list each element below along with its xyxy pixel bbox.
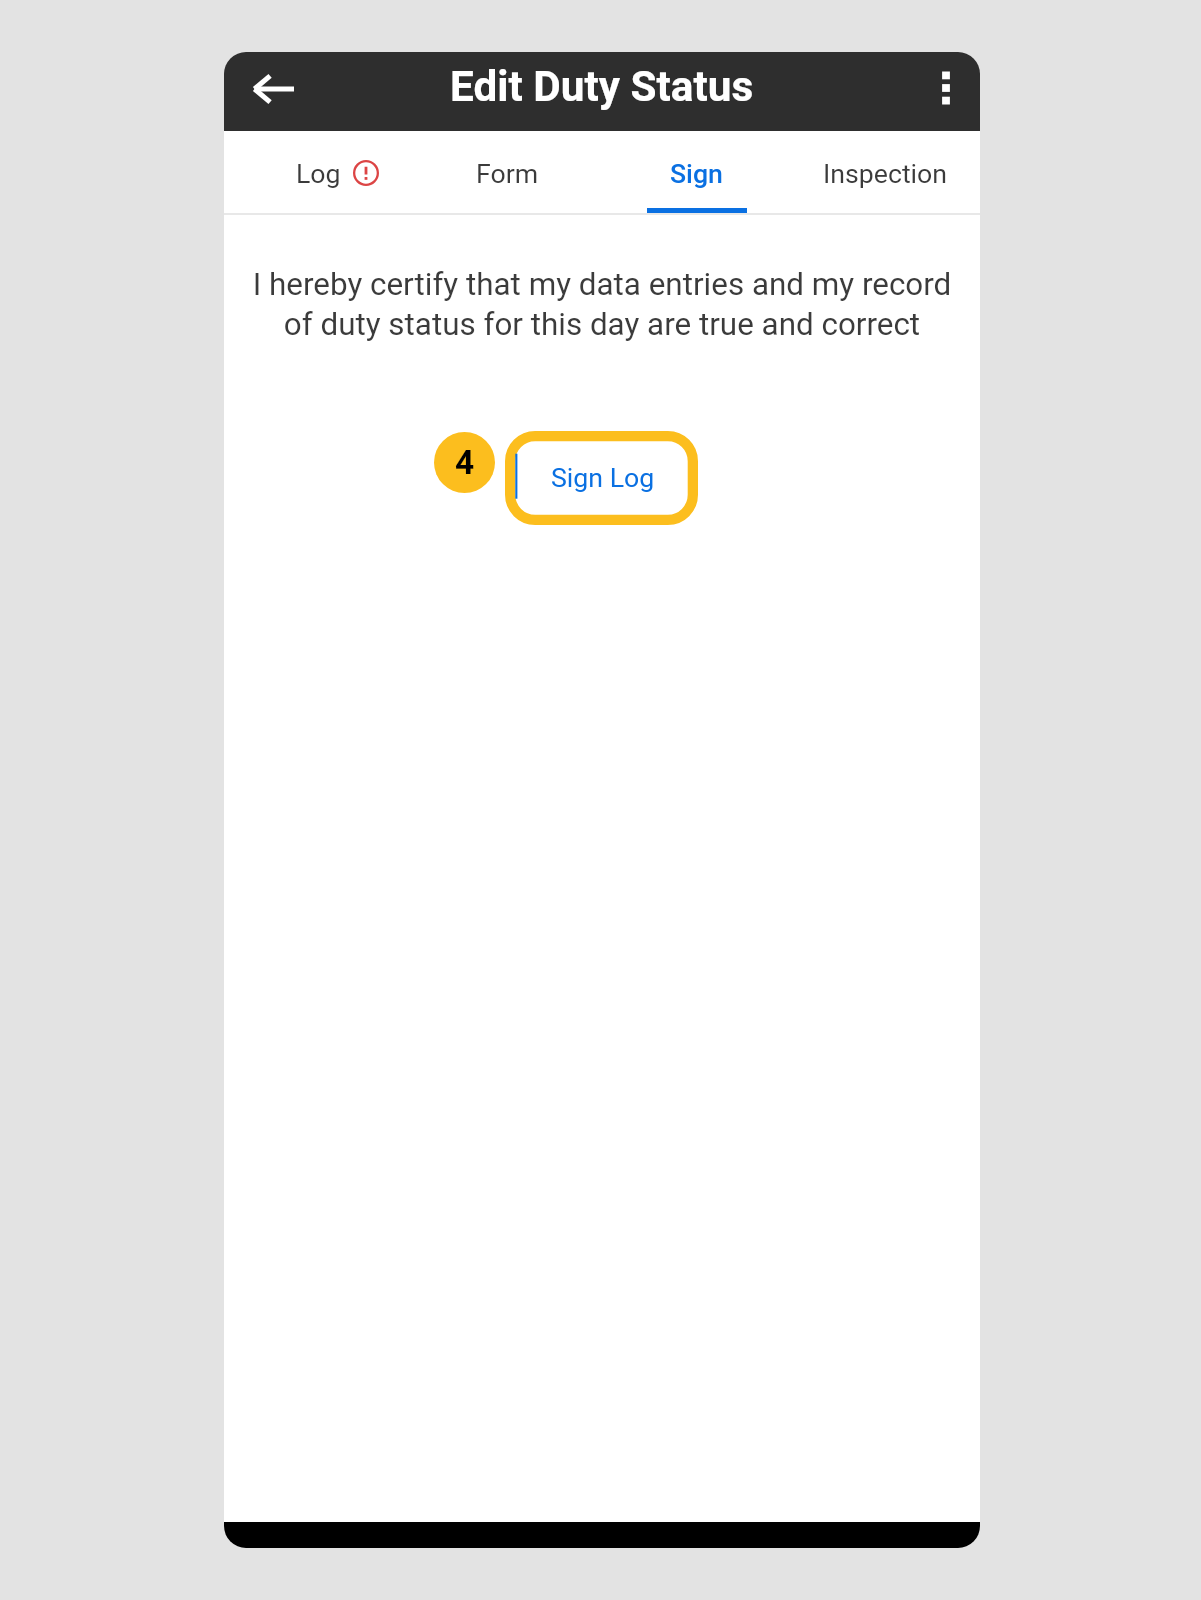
staticText: Edit Duty Status xyxy=(450,62,754,112)
staticText: Inspection xyxy=(823,158,948,189)
staticText: Log xyxy=(296,158,341,189)
button[interactable]: Sign Log xyxy=(505,431,698,525)
staticText: 4 xyxy=(455,443,475,482)
button[interactable]: Form xyxy=(413,131,602,215)
staticText: Sign Log xyxy=(551,462,655,493)
staticText: Form xyxy=(476,158,539,189)
staticText: Sign xyxy=(670,158,723,189)
button[interactable]: Back xyxy=(245,61,301,117)
button[interactable]: More options xyxy=(920,62,972,114)
staticText: I hereby certify that my data entries an… xyxy=(238,266,966,342)
button[interactable]: Inspection xyxy=(791,131,980,215)
button[interactable]: Log xyxy=(224,131,413,215)
button[interactable]: Sign xyxy=(602,131,791,215)
